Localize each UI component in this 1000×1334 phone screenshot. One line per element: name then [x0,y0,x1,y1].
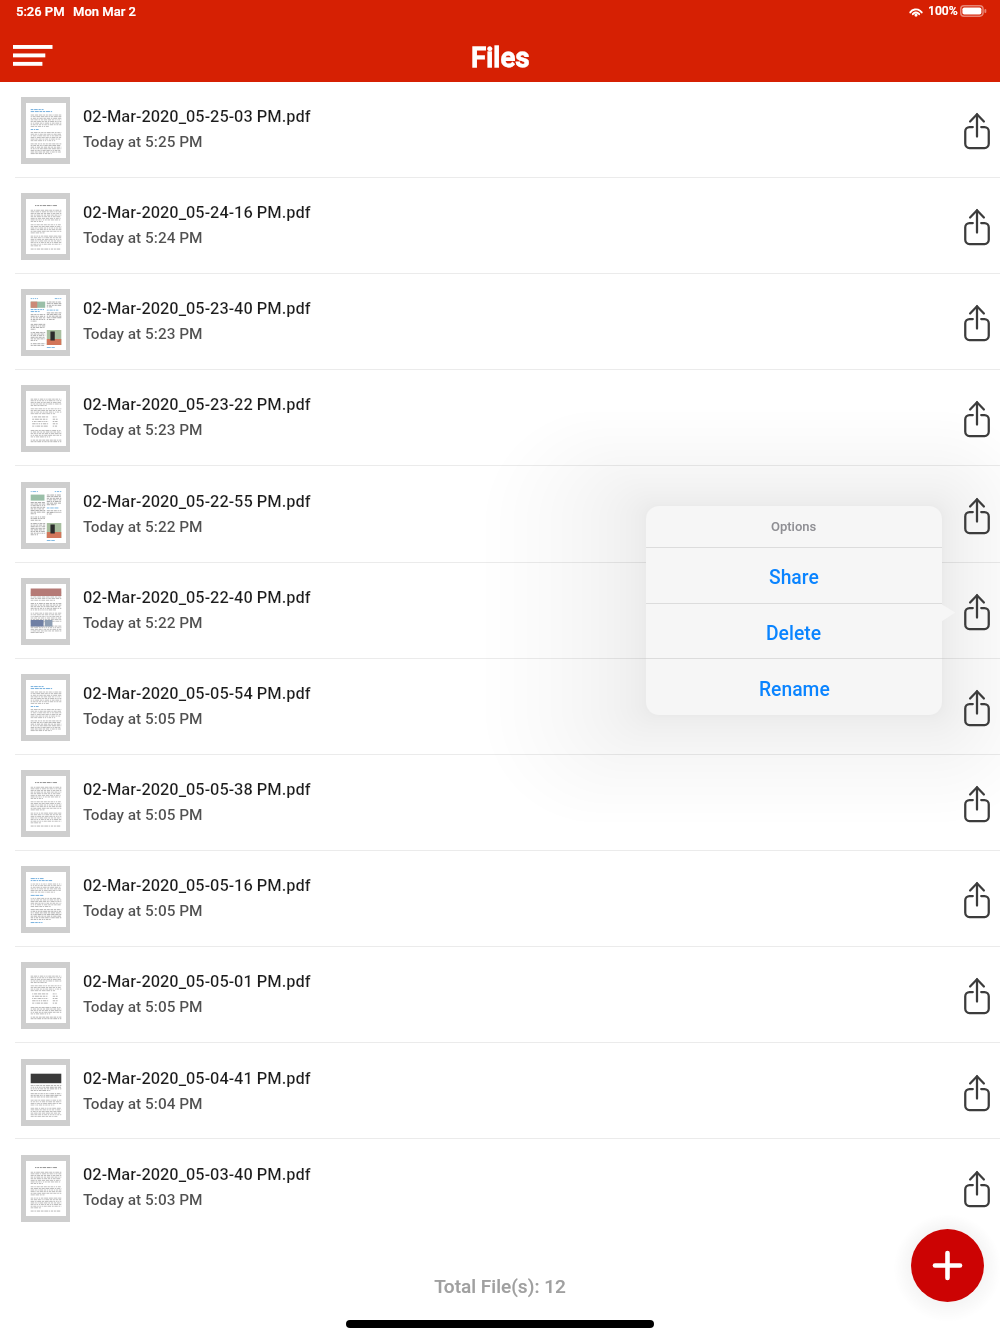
staticText: Today at 5:22 PM [83,518,203,536]
staticText: 02-Mar-2020_05-22-40 PM.pdf [83,588,311,607]
button[interactable]: Share [933,755,1000,851]
staticText: Options [771,519,817,534]
staticText: Mon Mar 2 [73,4,136,19]
button[interactable]: Share [933,1044,1000,1140]
button[interactable]: 02-Mar-2020_05-22-40 PM.pdf [0,563,1000,659]
staticText: 02-Mar-2020_05-04-41 PM.pdf [83,1069,311,1088]
staticText: 100% [928,4,958,18]
button[interactable]: Share [933,467,1000,563]
staticText: 02-Mar-2020_05-05-16 PM.pdf [83,876,311,895]
button[interactable]: Share [933,659,1000,755]
staticText: 02-Mar-2020_05-23-22 PM.pdf [83,395,311,414]
staticText: Today at 5:05 PM [83,998,203,1016]
staticText: Today at 5:05 PM [83,806,203,824]
button[interactable]: Menu [0,26,66,82]
button[interactable]: Share [933,563,1000,659]
staticText: 02-Mar-2020_05-03-40 PM.pdf [83,1165,311,1184]
staticText: Today at 5:25 PM [83,133,203,151]
staticText: 02-Mar-2020_05-24-16 PM.pdf [83,203,311,222]
button[interactable]: Rename [646,659,942,715]
staticText: Rename [759,678,830,701]
button[interactable]: Share [933,1140,1000,1236]
button[interactable]: 02-Mar-2020_05-22-55 PM.pdf [0,467,1000,563]
button[interactable]: Share [646,548,942,603]
staticText: Total File(s): 12 [0,1275,1000,1297]
button[interactable]: Add file [911,1229,984,1302]
staticText: Files [471,41,530,73]
staticText: 02-Mar-2020_05-05-01 PM.pdf [83,972,311,991]
staticText: 5:26 PM [16,4,65,19]
staticText: Today at 5:03 PM [83,1191,203,1209]
button[interactable]: 02-Mar-2020_05-05-01 PM.pdf [0,947,1000,1043]
staticText: 02-Mar-2020_05-25-03 PM.pdf [83,107,311,126]
staticText: Today at 5:23 PM [83,421,203,439]
staticText: 02-Mar-2020_05-23-40 PM.pdf [83,299,311,318]
staticText: Share [769,566,819,589]
staticText: Today at 5:24 PM [83,229,203,247]
button[interactable]: 02-Mar-2020_05-24-16 PM.pdf [0,178,1000,274]
button[interactable]: Share [933,274,1000,370]
button[interactable]: 02-Mar-2020_05-05-16 PM.pdf [0,851,1000,947]
staticText: Today at 5:05 PM [83,710,203,728]
button[interactable]: 02-Mar-2020_05-25-03 PM.pdf [0,82,1000,178]
button[interactable]: 02-Mar-2020_05-23-40 PM.pdf [0,274,1000,370]
staticText: Today at 5:22 PM [83,614,203,632]
button[interactable]: 02-Mar-2020_05-03-40 PM.pdf [0,1140,1000,1236]
staticText: Today at 5:04 PM [83,1095,203,1113]
button[interactable]: Share [933,851,1000,947]
button[interactable]: 02-Mar-2020_05-05-38 PM.pdf [0,755,1000,851]
staticText: Delete [766,622,822,645]
button[interactable]: Share [933,370,1000,466]
staticText: 02-Mar-2020_05-05-54 PM.pdf [83,684,311,703]
button[interactable]: Share [933,178,1000,274]
button[interactable]: Share [933,82,1000,178]
button[interactable]: 02-Mar-2020_05-05-54 PM.pdf [0,659,1000,755]
button[interactable]: 02-Mar-2020_05-23-22 PM.pdf [0,370,1000,466]
staticText: Today at 5:23 PM [83,325,203,343]
staticText: Today at 5:05 PM [83,902,203,920]
button[interactable]: Share [933,947,1000,1043]
staticText: 02-Mar-2020_05-22-55 PM.pdf [83,492,311,511]
button[interactable]: Delete [646,604,942,658]
staticText: 02-Mar-2020_05-05-38 PM.pdf [83,780,311,799]
button[interactable]: 02-Mar-2020_05-04-41 PM.pdf [0,1044,1000,1140]
